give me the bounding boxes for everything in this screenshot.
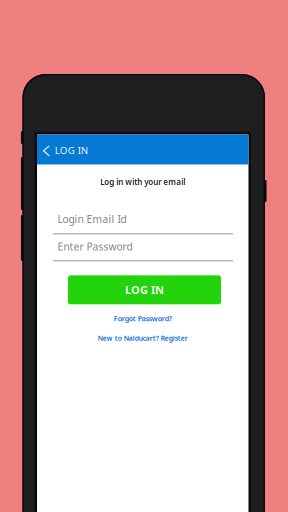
staticText: New to Nalducart? Register xyxy=(98,334,188,343)
staticText: Enter Password xyxy=(57,239,132,253)
staticText: Login Email Id xyxy=(57,212,126,226)
staticText: LOG IN xyxy=(55,143,88,157)
staticText: Forgot Password? xyxy=(114,314,172,323)
button[interactable]: New to Nalducart? Register xyxy=(37,333,248,344)
button[interactable]: Forgot Password? xyxy=(37,313,248,324)
button[interactable]: LOG IN xyxy=(68,275,221,304)
staticText: LOG IN xyxy=(125,282,164,297)
staticText: Log in with your email xyxy=(100,177,185,187)
button[interactable]: LOG IN xyxy=(37,134,141,164)
